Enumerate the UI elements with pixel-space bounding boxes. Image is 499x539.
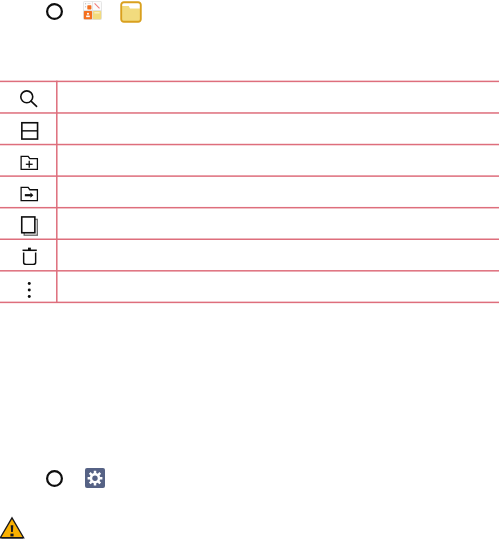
button[interactable]: More options bbox=[0, 273, 499, 305]
button[interactable]: Record bbox=[46, 3, 63, 20]
button[interactable]: Settings bbox=[85, 468, 105, 488]
button[interactable]: Record bbox=[46, 470, 63, 487]
button[interactable]: Copy bbox=[0, 209, 499, 241]
button[interactable]: App icon bbox=[83, 1, 102, 20]
button[interactable]: Split screen bbox=[0, 113, 57, 145]
button[interactable]: Copy bbox=[0, 209, 57, 241]
button[interactable]: Folder bbox=[120, 1, 142, 23]
button[interactable]: Search bbox=[0, 81, 499, 113]
button[interactable]: Split screen bbox=[0, 113, 499, 145]
button[interactable]: Move to folder bbox=[0, 177, 57, 209]
button[interactable]: More options bbox=[0, 273, 57, 305]
button[interactable]: Delete bbox=[0, 241, 57, 273]
button[interactable]: Search bbox=[0, 81, 57, 113]
button[interactable]: New folder bbox=[0, 145, 57, 177]
button[interactable]: Move to folder bbox=[0, 177, 499, 209]
button[interactable]: Warning bbox=[0, 516, 24, 539]
button[interactable]: Delete bbox=[0, 241, 499, 273]
button[interactable]: New folder bbox=[0, 145, 499, 177]
